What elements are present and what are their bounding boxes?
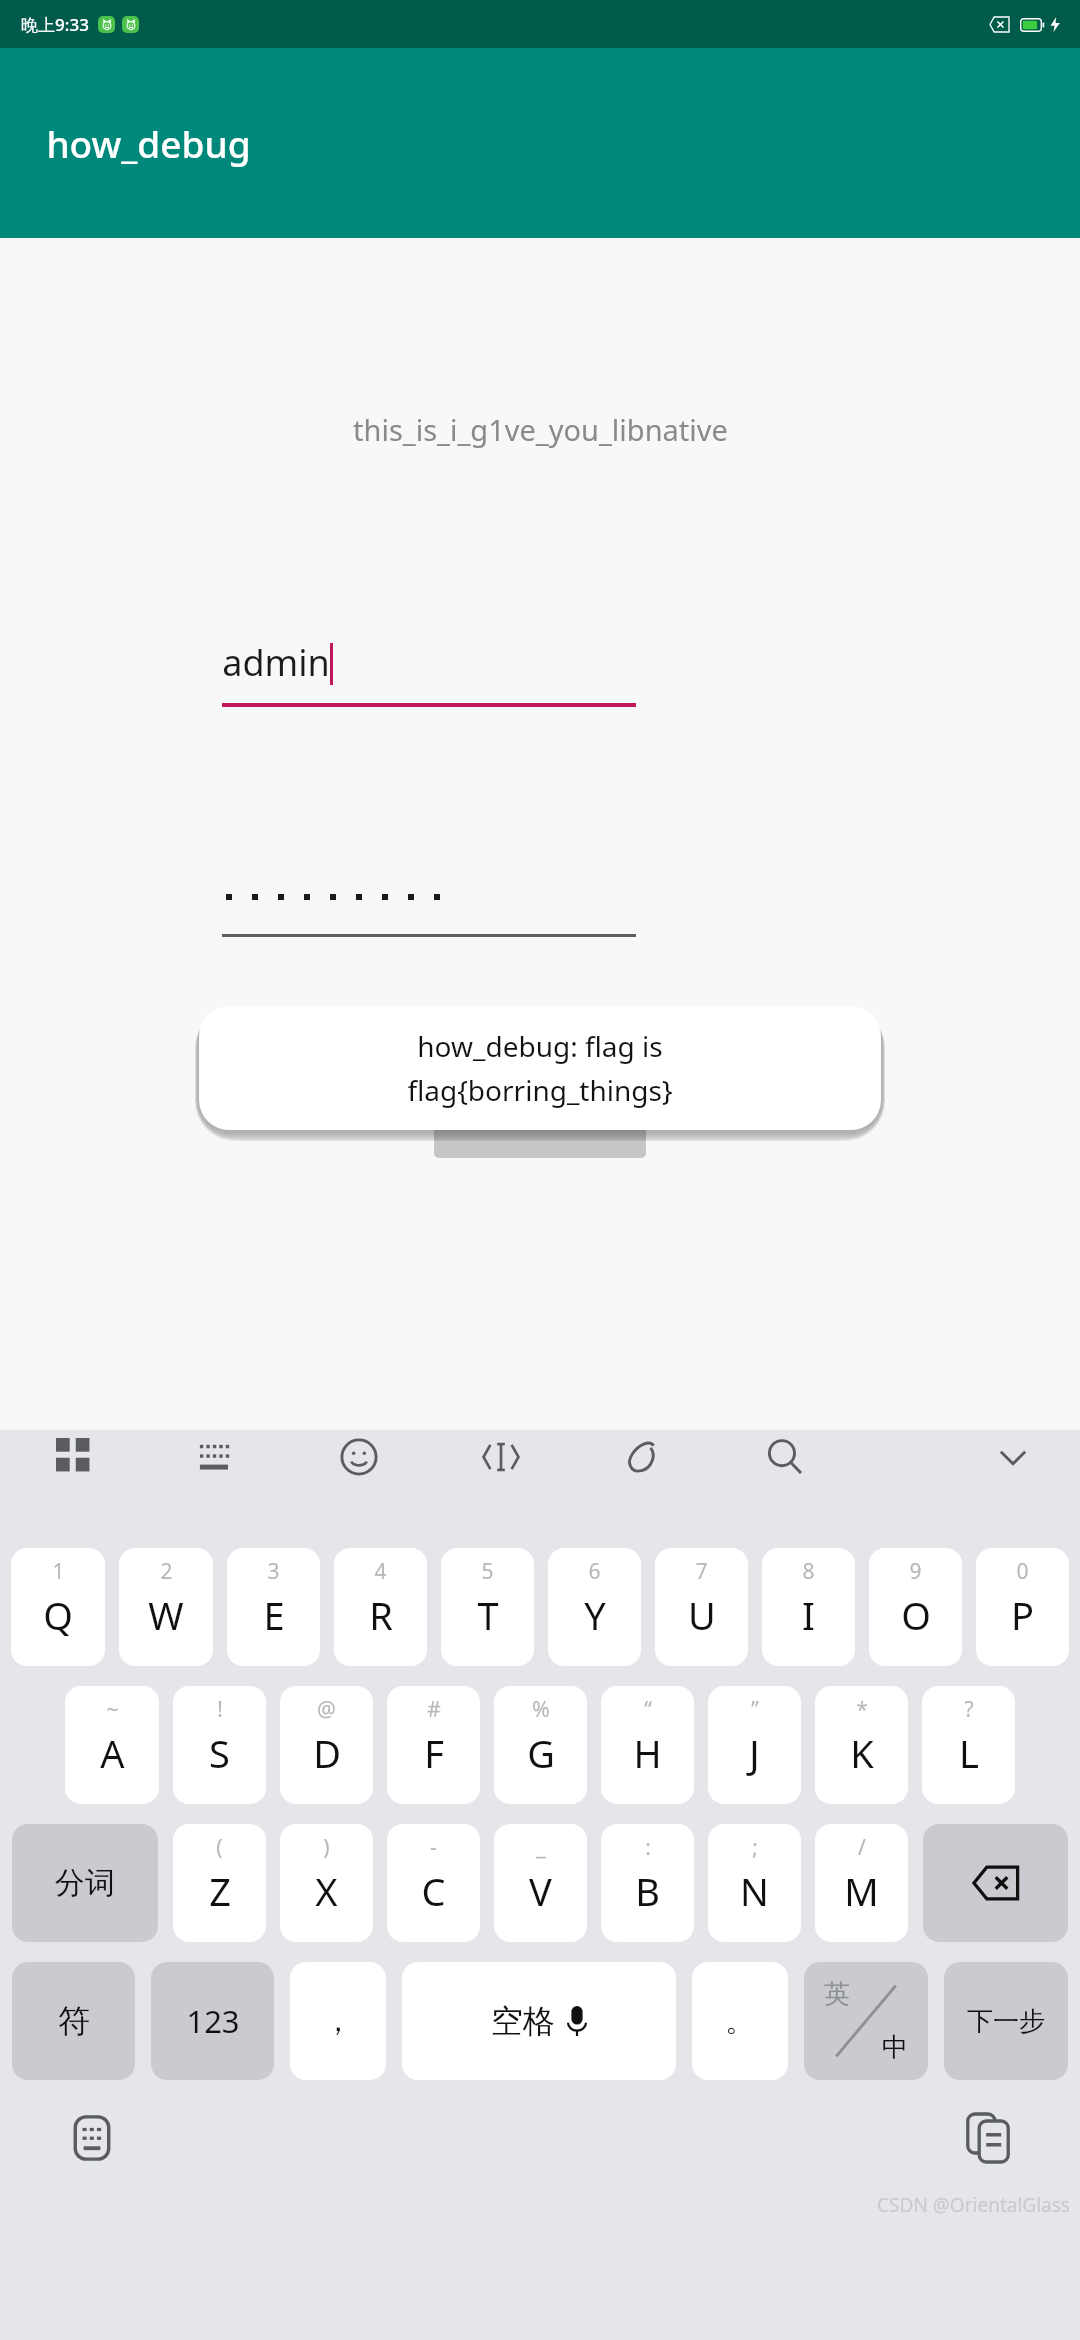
- button[interactable]: Search: [758, 1430, 812, 1484]
- staticText: ，: [323, 2002, 353, 2040]
- staticText: M: [844, 1865, 879, 1917]
- button[interactable]: :: [601, 1824, 694, 1942]
- staticText: Q: [43, 1589, 73, 1641]
- button[interactable]: 0: [976, 1548, 1069, 1666]
- staticText: ~: [106, 1695, 119, 1724]
- button[interactable]: _: [494, 1824, 587, 1942]
- button[interactable]: (: [173, 1824, 266, 1942]
- staticText: 7: [695, 1557, 708, 1586]
- staticText: *: [856, 1695, 868, 1724]
- staticText: 3: [267, 1557, 280, 1586]
- button[interactable]: 4: [334, 1548, 427, 1666]
- staticText: Z: [209, 1865, 231, 1917]
- button[interactable]: %: [494, 1686, 587, 1804]
- button[interactable]: /: [815, 1824, 908, 1942]
- staticText: N: [740, 1865, 769, 1917]
- staticText: K: [850, 1727, 874, 1779]
- button[interactable]: Backspace: [923, 1824, 1068, 1942]
- button[interactable]: 符: [12, 1962, 135, 2080]
- staticText: how_debug: flag is: [417, 1027, 663, 1065]
- staticText: flag{borring_things}: [407, 1071, 673, 1109]
- staticText: U: [688, 1589, 716, 1641]
- button[interactable]: “: [601, 1686, 694, 1804]
- button[interactable]: Switch English Chinese: [804, 1962, 928, 2080]
- staticText: 空格: [491, 2001, 555, 2041]
- button[interactable]: *: [815, 1686, 908, 1804]
- button[interactable]: Clipboard: [958, 2108, 1018, 2168]
- button[interactable]: @: [280, 1686, 373, 1804]
- staticText: J: [749, 1727, 760, 1779]
- button[interactable]: ~: [65, 1686, 159, 1804]
- button[interactable]: 空格: [402, 1962, 676, 2080]
- staticText: T: [477, 1589, 499, 1641]
- button[interactable]: [222, 876, 636, 937]
- staticText: F: [424, 1727, 444, 1779]
- staticText: 中: [882, 2031, 908, 2064]
- staticText: :: [645, 1833, 651, 1862]
- button[interactable]: ;: [708, 1824, 801, 1942]
- staticText: P: [1011, 1589, 1034, 1641]
- staticText: 6: [588, 1557, 601, 1586]
- button[interactable]: Attach: [616, 1430, 670, 1484]
- button[interactable]: Text cursor: [474, 1430, 528, 1484]
- staticText: 晚上9:33: [21, 13, 89, 36]
- button[interactable]: ”: [708, 1686, 801, 1804]
- button[interactable]: 3: [227, 1548, 320, 1666]
- button[interactable]: Grid: [48, 1430, 102, 1484]
- staticText: @: [317, 1695, 336, 1724]
- button[interactable]: ?: [922, 1686, 1015, 1804]
- staticText: G: [527, 1727, 555, 1779]
- button[interactable]: 123: [151, 1962, 274, 2080]
- staticText: 5: [481, 1557, 494, 1586]
- button[interactable]: 7: [655, 1548, 748, 1666]
- staticText: ”: [751, 1695, 759, 1724]
- staticText: %: [532, 1695, 550, 1724]
- staticText: 。: [725, 2002, 755, 2040]
- button[interactable]: 9: [869, 1548, 962, 1666]
- staticText: H: [633, 1727, 662, 1779]
- button[interactable]: admin: [222, 638, 636, 707]
- staticText: 下一步: [967, 2005, 1045, 2038]
- staticText: W: [148, 1589, 184, 1641]
- staticText: 符: [58, 2001, 90, 2041]
- staticText: ;: [752, 1833, 758, 1862]
- staticText: B: [635, 1865, 660, 1917]
- staticText: Y: [584, 1589, 606, 1641]
- staticText: admin: [222, 638, 330, 687]
- staticText: -: [430, 1833, 437, 1862]
- staticText: 4: [374, 1557, 387, 1586]
- button[interactable]: 6: [548, 1548, 641, 1666]
- button[interactable]: 1: [11, 1548, 105, 1666]
- staticText: L: [959, 1727, 979, 1779]
- button[interactable]: 分词: [12, 1824, 158, 1942]
- button[interactable]: 8: [762, 1548, 855, 1666]
- staticText: 分词: [55, 1864, 115, 1902]
- staticText: “: [644, 1695, 652, 1724]
- button[interactable]: 下一步: [944, 1962, 1068, 2080]
- button[interactable]: -: [387, 1824, 480, 1942]
- staticText: X: [315, 1865, 338, 1917]
- staticText: 0: [1016, 1557, 1029, 1586]
- staticText: ?: [964, 1695, 974, 1724]
- staticText: 9: [909, 1557, 922, 1586]
- button[interactable]: 。: [692, 1962, 788, 2080]
- staticText: O: [901, 1589, 931, 1641]
- staticText: D: [313, 1727, 341, 1779]
- staticText: 英: [824, 1978, 850, 2011]
- staticText: C: [421, 1865, 446, 1917]
- button[interactable]: LOGIN: [434, 1074, 646, 1158]
- staticText: !: [217, 1695, 223, 1724]
- button[interactable]: ): [280, 1824, 373, 1942]
- button[interactable]: Keyboard: [190, 1430, 244, 1484]
- button[interactable]: Hide keyboard: [986, 1430, 1040, 1484]
- button[interactable]: 5: [441, 1548, 534, 1666]
- staticText: CSDN @OrientalGlass: [877, 2192, 1070, 2218]
- button[interactable]: ，: [290, 1962, 386, 2080]
- staticText: how_debug: [46, 118, 251, 168]
- button[interactable]: #: [387, 1686, 480, 1804]
- button[interactable]: Switch keyboard: [62, 2108, 122, 2168]
- button[interactable]: 2: [119, 1548, 213, 1666]
- button[interactable]: Emoji: [332, 1430, 386, 1484]
- button[interactable]: !: [173, 1686, 266, 1804]
- staticText: _: [536, 1833, 546, 1862]
